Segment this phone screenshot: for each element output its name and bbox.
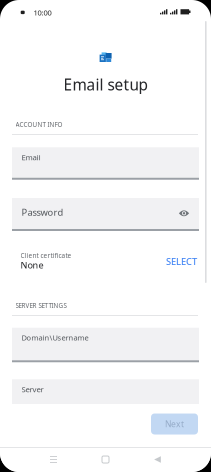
staticText: SERVER SETTINGS [15,301,66,310]
staticText: Email setup [63,74,147,95]
button[interactable]: Next [151,413,198,434]
staticText: Client certificate [21,251,72,260]
staticText: 10:00 [33,7,51,18]
staticText: ACCOUNT INFO [15,120,62,129]
staticText: Email [22,152,41,162]
staticText: Server [22,384,44,394]
staticText: Next [165,418,184,430]
staticText: Domain\Username [22,332,89,343]
button[interactable]: Client certificate [12,248,199,275]
staticText: SELECT [166,255,197,268]
staticText: Password [22,206,64,218]
button[interactable]: Back [131,448,183,471]
button[interactable]: Recent apps [27,448,79,471]
staticText: None [21,259,44,271]
button[interactable]: Home [79,448,131,471]
